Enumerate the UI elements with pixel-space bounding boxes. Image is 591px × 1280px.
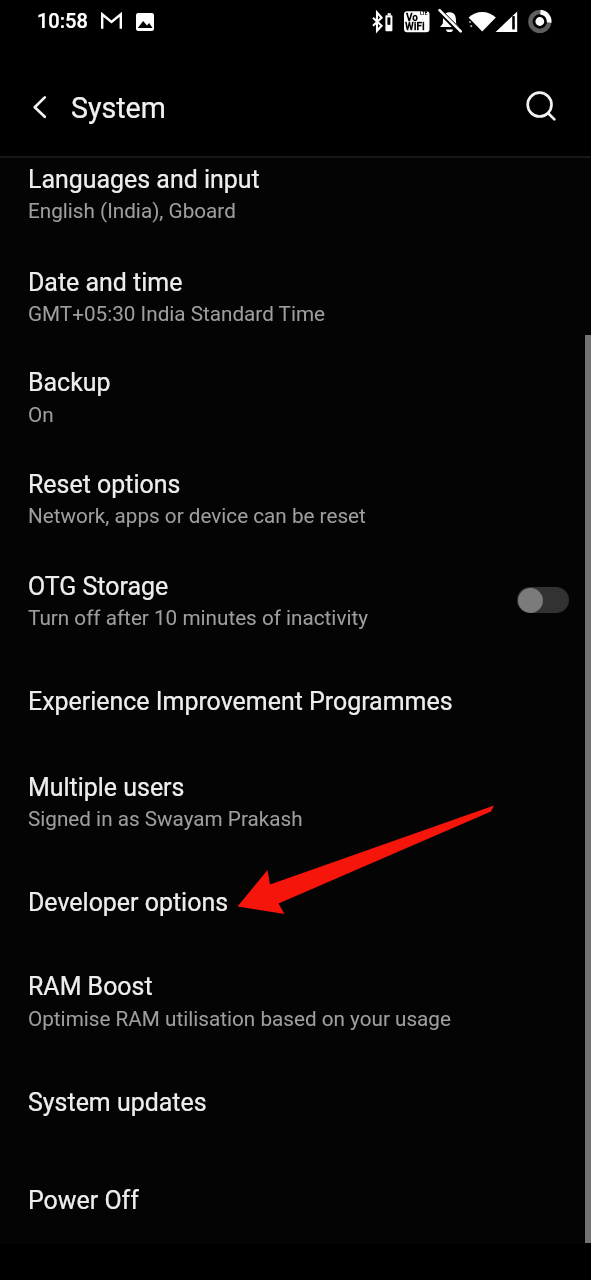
staticText: Signed in as Swayam Prakash [28,807,303,831]
button[interactable]: System updates [0,1064,591,1149]
staticText: RAM Boost [28,972,153,1001]
staticText: OTG Storage [28,572,169,601]
button[interactable]: Languages and input [0,158,591,259]
staticText: 10:58 [37,9,88,32]
button[interactable]: Back [12,79,62,129]
staticText: LTE [420,11,428,16]
staticText: English (India), Gboard [28,199,236,223]
staticText: Developer options [28,888,229,917]
staticText: System updates [28,1088,207,1117]
staticText: Languages and input [28,165,260,194]
staticText: Turn off after 10 minutes of inactivity [28,606,368,630]
staticText: WiFi [405,21,425,33]
staticText: System [71,91,166,125]
staticText: On [28,403,54,427]
staticText: Backup [28,368,111,397]
staticText: GMT+05:30 India Standard Time [28,302,326,326]
button[interactable]: RAM Boost [0,964,591,1065]
staticText: Vo [406,12,418,24]
button[interactable]: Backup [0,360,591,461]
button[interactable]: Power Off [0,1163,591,1248]
button[interactable]: Reset options [0,461,591,562]
button[interactable]: Developer options [0,865,591,950]
staticText: Reset options [28,470,181,499]
staticText: Multiple users [28,773,185,802]
staticText: Power Off [28,1186,139,1215]
staticText: Experience Improvement Programmes [28,687,453,716]
button[interactable]: OTG Storage toggle [517,587,569,613]
staticText: Network, apps or device can be reset [28,504,366,528]
button[interactable]: OTG Storage [0,562,591,663]
button[interactable]: Multiple users [0,764,591,865]
button[interactable]: Experience Improvement Programmes [0,663,591,748]
button[interactable]: Date and time [0,259,591,360]
staticText: Date and time [28,268,183,297]
staticText: Optimise RAM utilisation based on your u… [28,1007,451,1031]
button[interactable]: Search [515,80,563,128]
